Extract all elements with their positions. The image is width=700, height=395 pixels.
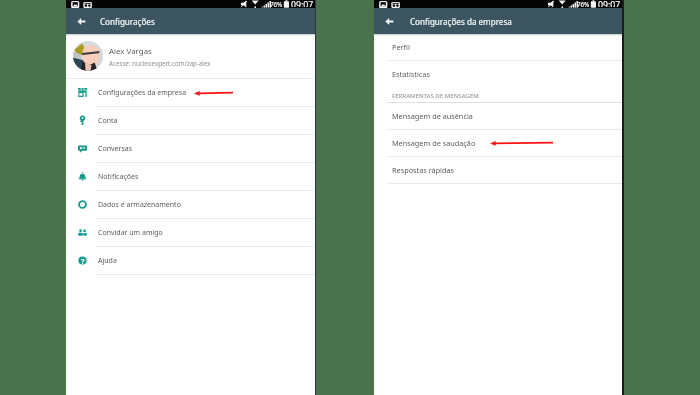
button[interactable]: Alex Vargas — [66, 34, 316, 78]
button[interactable]: Dados e armazenamento — [66, 191, 316, 218]
button[interactable]: Configurações da empresa — [66, 79, 316, 106]
staticText: Respostas rápidas — [392, 165, 455, 175]
staticText: 76% — [270, 0, 283, 8]
button[interactable]: Conta — [66, 107, 316, 134]
staticText: Alex Vargas — [109, 46, 152, 57]
button[interactable]: ? — [66, 247, 316, 274]
staticText: 09:07 — [291, 0, 314, 7]
staticText: Perfil — [392, 42, 410, 52]
staticText: Acesse: nucleoexpert.com/zap-alex — [109, 59, 211, 67]
button[interactable]: Notificações — [66, 163, 316, 190]
staticText: Configurações — [100, 16, 155, 27]
staticText: 09:07 — [598, 0, 621, 7]
staticText: Conversas — [98, 144, 133, 154]
button[interactable]: Respostas rápidas — [374, 157, 623, 183]
staticText: Notificações — [98, 172, 139, 182]
staticText: FERRAMENTAS DE MENSAGEM — [392, 91, 479, 99]
button[interactable]: Convidar um amigo — [66, 219, 316, 246]
button[interactable]: Mensagem de saudação — [374, 130, 623, 156]
staticText: Configurações da empresa — [410, 16, 512, 27]
staticText: Conta — [98, 116, 118, 126]
staticText: Configurações da empresa — [98, 88, 187, 98]
staticText: Dados e armazenamento — [98, 200, 181, 210]
staticText: Ajuda — [98, 256, 117, 266]
button[interactable]: Back — [383, 15, 396, 28]
staticText: Convidar um amigo — [98, 228, 163, 238]
staticText: 76% — [577, 0, 590, 8]
staticText: ? — [81, 256, 85, 265]
button[interactable]: Estatísticas — [374, 61, 623, 87]
button[interactable]: Back — [75, 15, 88, 28]
staticText: Mensagem de saudação — [392, 138, 476, 148]
button[interactable]: Perfil — [374, 34, 623, 60]
button[interactable]: Conversas — [66, 135, 316, 162]
staticText: Estatísticas — [392, 69, 430, 79]
staticText: Mensagem de ausência — [392, 111, 473, 121]
button[interactable]: Mensagem de ausência — [374, 103, 623, 129]
